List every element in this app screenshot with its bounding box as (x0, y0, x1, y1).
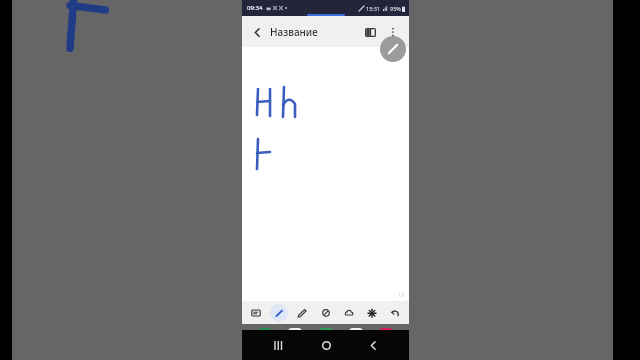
button[interactable]: More options (384, 23, 402, 41)
button[interactable]: Eraser (317, 304, 335, 322)
staticText: 95% (390, 5, 401, 12)
button[interactable]: Highlighter (293, 304, 311, 322)
staticText: 15:31 (366, 5, 381, 12)
staticText: Название (270, 25, 318, 39)
staticText: 1/1 (398, 292, 405, 298)
button[interactable]: 1/1 (242, 47, 409, 301)
button[interactable]: Back (249, 24, 265, 40)
button[interactable]: Colour (349, 328, 363, 336)
button[interactable]: Back (362, 334, 384, 356)
button[interactable]: Colour (258, 328, 272, 336)
button[interactable]: Magic tools (363, 304, 381, 322)
button[interactable]: Text box (247, 304, 265, 322)
button[interactable]: Edit note (380, 36, 406, 62)
button[interactable]: Colour (379, 328, 393, 336)
button[interactable]: Shapes (340, 304, 358, 322)
button[interactable]: Pen (270, 304, 288, 322)
button[interactable]: View mode (361, 23, 379, 41)
button[interactable]: Home (315, 334, 337, 356)
button[interactable]: Colour (319, 328, 333, 336)
button[interactable]: Colour (288, 328, 302, 336)
button[interactable]: Recent apps (267, 334, 289, 356)
button[interactable]: Undo (386, 304, 404, 322)
staticText: 09:34 (247, 4, 263, 12)
